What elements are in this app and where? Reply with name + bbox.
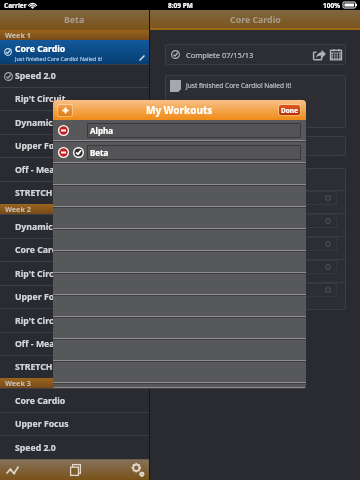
staticText: 8:09 PM (168, 1, 193, 10)
button[interactable] (53, 230, 306, 252)
button[interactable]: Week 3 (0, 378, 149, 388)
button[interactable]: Progress (1, 459, 24, 480)
button[interactable]: Beta (53, 142, 306, 164)
button[interactable]: Rip't Circuit (0, 87, 149, 110)
button[interactable]: Alpha (53, 120, 306, 142)
staticText: Done (281, 106, 298, 115)
button[interactable] (53, 296, 306, 318)
staticText: Off - Measure (15, 164, 74, 176)
button[interactable]: Speed 2.0 (0, 435, 149, 459)
button[interactable] (53, 208, 306, 230)
staticText: Core Cardio (15, 244, 66, 256)
staticText: Rip't Circuit (15, 315, 66, 327)
staticText: Rip't Circuit (15, 268, 66, 280)
button[interactable]: Upper Focus (0, 412, 149, 435)
staticText: STRETCH (15, 187, 53, 199)
button[interactable] (53, 274, 306, 296)
button[interactable]: Week 2 (0, 204, 149, 214)
button[interactable] (53, 384, 306, 389)
staticText: Week 1 (5, 30, 31, 40)
button[interactable]: Dynamic Circuit (0, 110, 149, 134)
staticText: Alpha (90, 125, 113, 136)
button[interactable]: Remove (166, 169, 345, 309)
button[interactable]: Off - Measure (0, 332, 149, 355)
staticText: Week 3 (5, 378, 31, 388)
button[interactable] (53, 362, 306, 384)
staticText: Speed 2.0 (15, 442, 56, 454)
other: Remove (325, 264, 331, 270)
staticText: Beta (64, 14, 85, 26)
staticText: Off - Measure (15, 338, 74, 350)
button[interactable]: Rip't Circuit (0, 308, 149, 332)
staticText: Just finished Core Cardio! Nailed it! (15, 55, 103, 62)
button[interactable]: Week 1 (0, 30, 149, 40)
button[interactable] (166, 137, 345, 155)
staticText: Speed 2.0 (15, 70, 56, 82)
staticText: My Workouts (146, 103, 213, 117)
button[interactable]: Calendar (330, 49, 342, 60)
staticText: Upper Focus (15, 140, 69, 152)
staticText: Core Cardio (230, 14, 281, 26)
button[interactable]: Add workout (58, 105, 72, 116)
other: Remove (325, 195, 331, 201)
button[interactable]: Remove (173, 261, 336, 273)
other: Remove (325, 218, 331, 224)
button[interactable]: Settings (126, 459, 149, 480)
button[interactable]: Upper Focus (0, 285, 149, 308)
staticText: STRETCH (15, 361, 53, 373)
button[interactable]: Core Cardio (0, 388, 149, 412)
staticText: Upper Focus (15, 418, 69, 430)
staticText: Complete 07/15/13 (186, 50, 254, 60)
staticText: Carrier (4, 1, 27, 10)
staticText: Just finished Core Cardio! Nailed it! (186, 81, 292, 90)
staticText: Beta (90, 147, 109, 158)
button[interactable]: Speed 2.0 (0, 64, 149, 87)
other: Remove (325, 287, 331, 293)
button[interactable]: Complete 07/15/13 (166, 45, 345, 64)
button[interactable]: Upper Focus (0, 134, 149, 157)
button[interactable] (53, 186, 306, 208)
staticText: Upper Focus (15, 291, 69, 303)
staticText: Week 2 (5, 204, 31, 214)
button[interactable]: Remove (173, 284, 336, 296)
button[interactable]: Done (279, 105, 300, 115)
staticText: Dynamic Circuit (15, 221, 84, 233)
button[interactable]: Remove (173, 238, 336, 250)
staticText: Core Cardio (15, 43, 66, 55)
button[interactable] (53, 340, 306, 362)
button[interactable]: Remove (173, 215, 336, 227)
button[interactable]: Share (313, 49, 326, 60)
button[interactable]: Rip't Circuit (0, 261, 149, 285)
staticText: Core Cardio (15, 395, 66, 407)
staticText: Dynamic Circuit (15, 117, 84, 129)
button[interactable]: Dynamic Circuit (0, 214, 149, 238)
staticText: 100% (323, 1, 341, 10)
button[interactable]: Just finished Core Cardio! Nailed it! (166, 76, 345, 127)
other: Remove (325, 241, 331, 247)
button[interactable] (53, 318, 306, 340)
button[interactable] (53, 164, 306, 186)
button[interactable]: Core Cardio (0, 238, 149, 261)
button[interactable]: Remove (173, 192, 336, 204)
button[interactable]: Off - Measure (0, 157, 149, 181)
button[interactable] (53, 252, 306, 274)
button[interactable]: Workouts (64, 459, 87, 480)
staticText: Rip't Circuit (15, 93, 66, 105)
button[interactable]: STRETCH (0, 181, 149, 204)
button[interactable]: STRETCH (0, 355, 149, 378)
button[interactable]: Core Cardio (0, 40, 149, 64)
